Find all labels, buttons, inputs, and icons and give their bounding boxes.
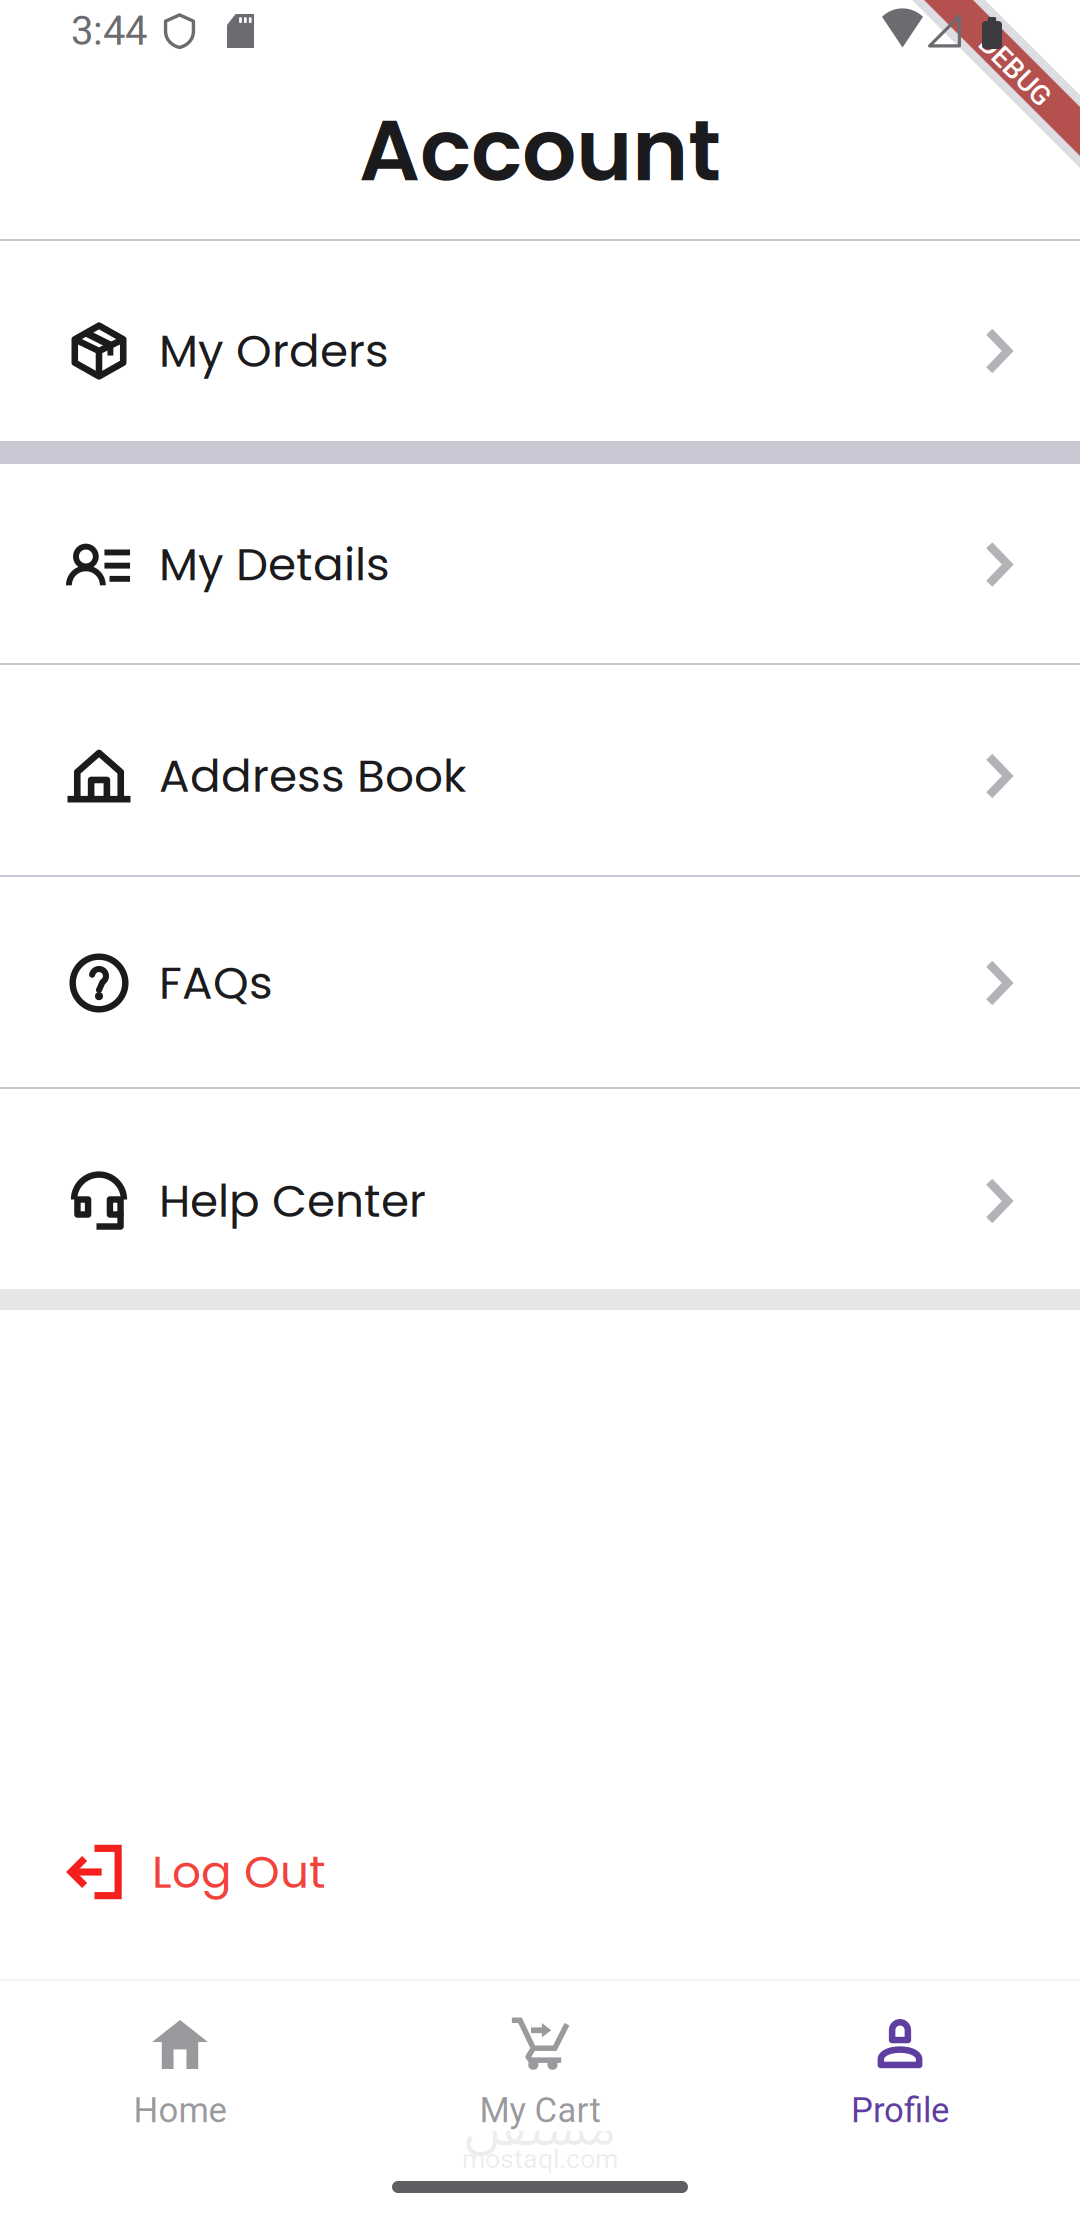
staticText: Profile [851, 2090, 949, 2131]
staticText: مستقل [464, 2075, 615, 2182]
staticText: Log Out [152, 1840, 326, 1904]
staticText: Home [133, 2090, 226, 2131]
button[interactable]: My Cart [360, 1981, 720, 2131]
staticText: My Orders [159, 319, 389, 383]
button[interactable]: Home [0, 1981, 360, 2131]
button[interactable]: FAQs [0, 877, 1080, 1087]
staticText: My Details [159, 533, 390, 596]
staticText: Account [359, 91, 721, 210]
button[interactable]: Address Book [0, 665, 1080, 875]
staticText: 3:44 [71, 8, 147, 54]
staticText: DEBUG [970, 54, 1059, 86]
button[interactable]: Help Center [0, 1089, 1080, 1289]
button[interactable]: Log Out [0, 1824, 1080, 1920]
staticText: mostaql.com [462, 2143, 618, 2175]
staticText: FAQs [159, 951, 273, 1015]
staticText: Help Center [159, 1169, 426, 1233]
staticText: Address Book [159, 744, 466, 808]
button[interactable]: My Details [0, 464, 1080, 663]
button[interactable]: My Orders [0, 241, 1080, 441]
button[interactable]: Profile [720, 1981, 1080, 2131]
staticText: My Cart [479, 2090, 600, 2131]
